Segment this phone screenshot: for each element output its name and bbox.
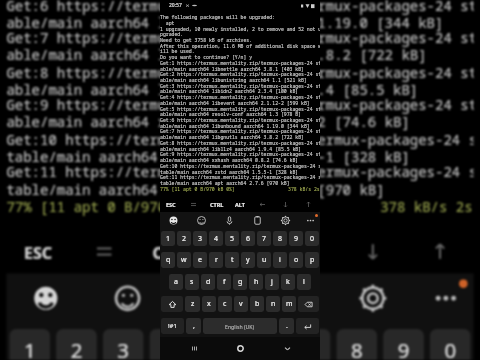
button[interactable]: o	[289, 252, 303, 268]
button[interactable]: 2	[56, 329, 97, 360]
button[interactable]: s	[185, 274, 199, 290]
button[interactable]: 8	[336, 329, 377, 360]
button[interactable]: 5	[225, 231, 239, 246]
button[interactable]: Shift	[161, 296, 183, 312]
button[interactable]: Sticker	[192, 212, 210, 228]
button[interactable]: UP	[297, 196, 320, 212]
button[interactable]: 7	[290, 329, 330, 360]
button[interactable]: x	[202, 296, 216, 312]
button[interactable]: TAB	[71, 227, 138, 273]
button[interactable]: w	[177, 252, 191, 268]
button[interactable]: q	[161, 252, 175, 268]
button[interactable]: TAB	[182, 196, 205, 212]
button[interactable]: z	[185, 296, 200, 312]
button[interactable]: Voice input	[220, 212, 238, 228]
button[interactable]: 1	[161, 231, 175, 246]
button[interactable]: CTRL	[205, 196, 228, 212]
staticText: pgraded.	[160, 31, 320, 38]
button[interactable]: ESC	[6, 227, 71, 273]
staticText: 3	[198, 234, 203, 244]
button[interactable]: ALT	[205, 227, 272, 273]
button[interactable]: g	[233, 274, 247, 290]
button[interactable]: ESC	[160, 196, 182, 212]
button[interactable]: 0	[430, 329, 471, 360]
button[interactable]: Settings	[345, 273, 398, 320]
staticText: 77% [11 apt 0 B/970 kB 0%]	[160, 186, 235, 193]
button[interactable]: l	[297, 274, 311, 290]
button[interactable]: 4	[149, 329, 190, 360]
button[interactable]: LEFT	[251, 196, 274, 212]
button[interactable]: Backspace	[298, 296, 319, 312]
button[interactable]: More	[301, 212, 319, 228]
button[interactable]: .	[279, 318, 294, 334]
button[interactable]: DOWN	[339, 227, 406, 273]
button[interactable]: Emoji	[164, 212, 182, 228]
button[interactable]: n	[266, 296, 280, 312]
button[interactable]: 3	[103, 329, 144, 360]
button[interactable]: i	[273, 252, 287, 268]
button[interactable]: Sticker	[100, 273, 152, 320]
button[interactable]: b	[250, 296, 264, 312]
button[interactable]: Back	[274, 337, 300, 360]
button[interactable]: j	[265, 274, 279, 290]
button[interactable]: 9	[383, 329, 424, 360]
button[interactable]: p	[305, 252, 319, 268]
button[interactable]: 9	[289, 231, 303, 246]
button[interactable]: 8	[273, 231, 287, 246]
button[interactable]: u	[257, 252, 271, 268]
button[interactable]: English (UK)	[203, 318, 277, 334]
button[interactable]: Settings	[276, 212, 294, 228]
staticText: Get:8 https://termux.mentality.rip/termu…	[160, 140, 320, 147]
staticText: 1 upgraded, 10 newly installed, 2 to rem…	[160, 26, 320, 33]
button[interactable]: 7	[257, 231, 271, 246]
button[interactable]: m	[282, 296, 296, 312]
button[interactable]: 2	[177, 231, 191, 246]
button[interactable]: ,	[186, 318, 201, 334]
button[interactable]: Home	[227, 337, 253, 360]
staticText: ill be used.	[160, 48, 320, 55]
button[interactable]: 4	[209, 231, 223, 246]
button[interactable]: 5	[196, 329, 237, 360]
button[interactable]: k	[281, 274, 295, 290]
button[interactable]: 6	[241, 231, 255, 246]
button[interactable]: !#1	[161, 318, 184, 334]
staticText: table/main aarch64 apt aarch64 2.7.6 [97…	[6, 180, 474, 200]
staticText: 3	[117, 338, 132, 360]
button[interactable]: r	[209, 252, 223, 268]
button[interactable]: y	[241, 252, 255, 268]
button[interactable]: Clipboard	[263, 273, 316, 320]
button[interactable]: ALT	[228, 196, 251, 212]
staticText: 0	[310, 234, 315, 244]
button[interactable]: 0	[305, 231, 319, 246]
button[interactable]: h	[249, 274, 263, 290]
button[interactable]: CTRL	[138, 227, 205, 273]
button[interactable]: Enter	[296, 318, 319, 334]
staticText: CTRL	[152, 241, 193, 262]
button[interactable]: 6	[243, 329, 284, 360]
button[interactable]: t	[225, 252, 239, 268]
button[interactable]: 3	[193, 231, 207, 246]
button[interactable]: LEFT	[272, 227, 339, 273]
button[interactable]: DOWN	[274, 196, 297, 212]
staticText: 20:57	[169, 2, 182, 9]
staticText: able/main aarch64 xxhash aarch64 0.8.2 […	[6, 113, 474, 133]
button[interactable]: Emoji	[18, 273, 71, 320]
button[interactable]: f	[217, 274, 231, 290]
button[interactable]: Clipboard	[248, 212, 266, 228]
button[interactable]: Recent apps	[181, 337, 207, 360]
staticText: 9	[398, 338, 412, 360]
staticText: 9	[294, 234, 299, 244]
button[interactable]: More	[418, 273, 471, 320]
staticText: t	[231, 255, 234, 265]
button[interactable]: UP	[406, 227, 474, 273]
button[interactable]: v	[234, 296, 248, 312]
button[interactable]: c	[218, 296, 232, 312]
button[interactable]: e	[193, 252, 207, 268]
staticText: ALT	[235, 201, 245, 208]
button[interactable]: 1	[9, 329, 50, 360]
staticText: Get:11 https://termux.mentality.rip/term…	[160, 174, 320, 181]
button[interactable]: d	[201, 274, 215, 290]
button[interactable]: Voice input	[182, 273, 234, 320]
button[interactable]: a	[169, 274, 183, 290]
